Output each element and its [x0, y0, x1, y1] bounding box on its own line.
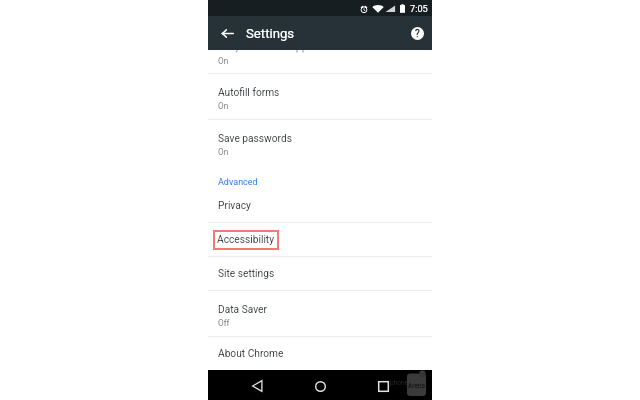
button[interactable]: About Chrome [208, 337, 432, 370]
button[interactable]: Back [226, 370, 289, 400]
button[interactable]: Save passwords [208, 120, 432, 165]
staticText: Advanced [218, 177, 258, 188]
staticText: Off [218, 318, 230, 328]
staticText: Privacy [218, 200, 251, 212]
staticText: Autofill forms [218, 87, 280, 99]
staticText: phone [390, 379, 408, 387]
button[interactable]: On [208, 50, 432, 73]
staticText: Arena [408, 382, 425, 390]
staticText: Save passwords [218, 133, 292, 145]
button[interactable]: Autofill forms [208, 74, 432, 119]
staticText: About Chrome [218, 348, 284, 360]
button[interactable]: Site settings [208, 257, 432, 290]
staticText: Data Saver [218, 304, 267, 316]
staticText: On [218, 56, 229, 66]
button[interactable]: Recent apps [352, 370, 415, 400]
button[interactable]: Help [406, 22, 428, 44]
staticText: On [218, 101, 229, 111]
staticText: 7:05 [410, 3, 428, 14]
staticText: Accessibility [217, 234, 275, 246]
staticText: ? [415, 28, 420, 40]
button[interactable]: Accessibility [208, 223, 432, 256]
button[interactable]: Back [215, 21, 239, 45]
staticText: Settings [246, 26, 295, 41]
button[interactable]: Privacy [208, 189, 432, 222]
staticText: On [218, 147, 229, 157]
button[interactable]: Home [289, 370, 352, 400]
button[interactable]: Data Saver [208, 291, 432, 336]
staticText: Site settings [218, 268, 275, 280]
